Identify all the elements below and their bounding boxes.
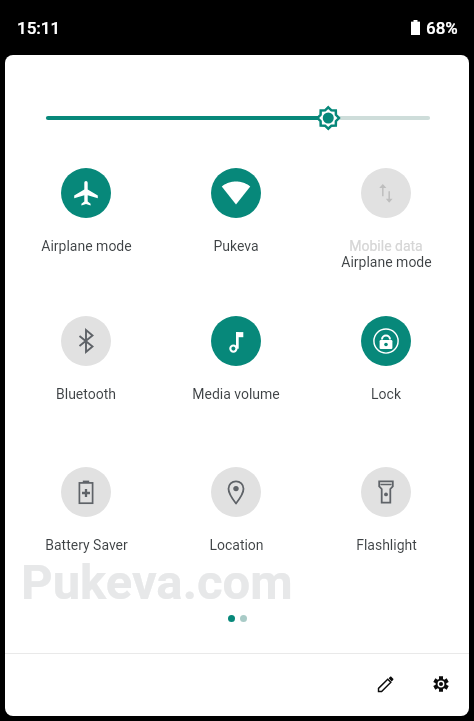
- button[interactable]: Location: [161, 467, 311, 553]
- staticText: Battery Saver: [45, 537, 128, 553]
- staticText: Airplane mode: [41, 238, 132, 254]
- staticText: Flashlight: [356, 537, 417, 553]
- button[interactable]: Battery Saver: [11, 467, 161, 553]
- staticText: Media volume: [192, 386, 280, 402]
- button[interactable]: Pukeva: [161, 168, 311, 254]
- staticText: Pukeva.com: [21, 554, 293, 611]
- button[interactable]: Mobile data: [311, 168, 461, 270]
- button[interactable]: Media volume: [161, 316, 311, 402]
- button[interactable]: Lock: [311, 316, 461, 402]
- staticText: Lock: [371, 386, 401, 402]
- staticText: 68%: [426, 18, 458, 38]
- button[interactable]: Bluetooth: [11, 316, 161, 402]
- staticText: 15:11: [17, 18, 61, 38]
- staticText: Bluetooth: [56, 386, 116, 402]
- button[interactable]: Brightness: [42, 104, 434, 132]
- staticText: Location: [209, 537, 264, 553]
- button[interactable]: Settings: [417, 660, 465, 708]
- staticText: Mobile data: [349, 238, 423, 254]
- button[interactable]: Flashlight: [311, 467, 461, 553]
- button[interactable]: Edit: [362, 660, 410, 708]
- staticText: Pukeva: [213, 238, 259, 254]
- staticText: Airplane mode: [341, 254, 432, 270]
- button[interactable]: Airplane mode: [11, 168, 161, 254]
